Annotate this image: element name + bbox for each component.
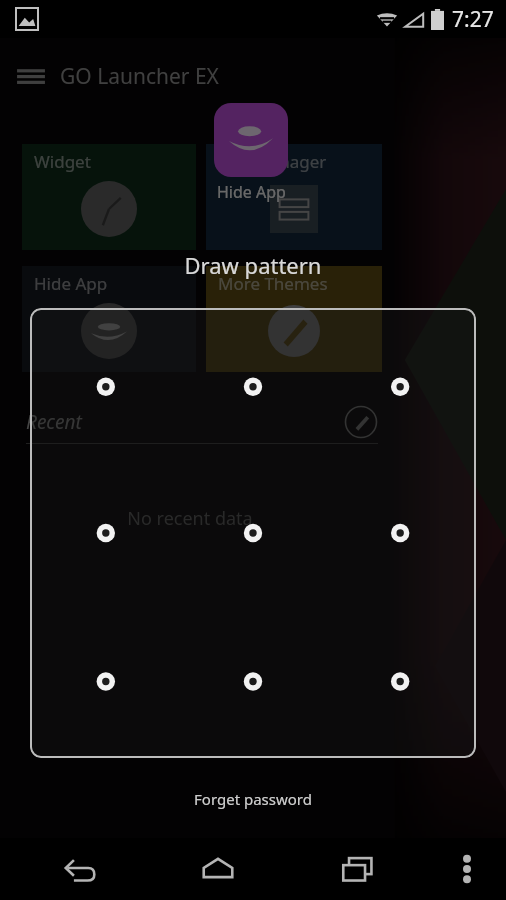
staticText: Hide App [217, 181, 286, 203]
button[interactable]: Forget password [0, 778, 506, 820]
button[interactable]: Hide App [214, 103, 288, 203]
button[interactable]: Recent apps [288, 838, 428, 900]
button[interactable]: Back [8, 838, 148, 900]
staticText: 7:27 [452, 5, 494, 34]
button[interactable]: More Themes [206, 266, 382, 372]
other: Screenshot [16, 8, 38, 30]
button[interactable]: Hide App [22, 266, 196, 372]
button[interactable]: More options [428, 838, 506, 900]
staticText: Recent [26, 409, 82, 435]
staticText: Draw pattern [0, 250, 506, 280]
staticText: No recent data [0, 506, 380, 531]
staticText: App Manager [218, 150, 327, 173]
staticText: Widget [34, 150, 91, 173]
button[interactable]: Menu [14, 56, 219, 96]
staticText: Forget password [194, 789, 312, 809]
button[interactable]: Home [148, 838, 288, 900]
staticText: More Themes [218, 272, 328, 295]
staticText: GO Launcher EX [60, 62, 219, 91]
button[interactable]: Pattern lock grid [30, 308, 476, 758]
other: Menu [14, 59, 48, 93]
staticText: Hide App [34, 272, 108, 295]
button[interactable]: Widget [22, 144, 196, 250]
button[interactable]: App Manager [206, 144, 382, 250]
other: Edit [344, 405, 378, 439]
